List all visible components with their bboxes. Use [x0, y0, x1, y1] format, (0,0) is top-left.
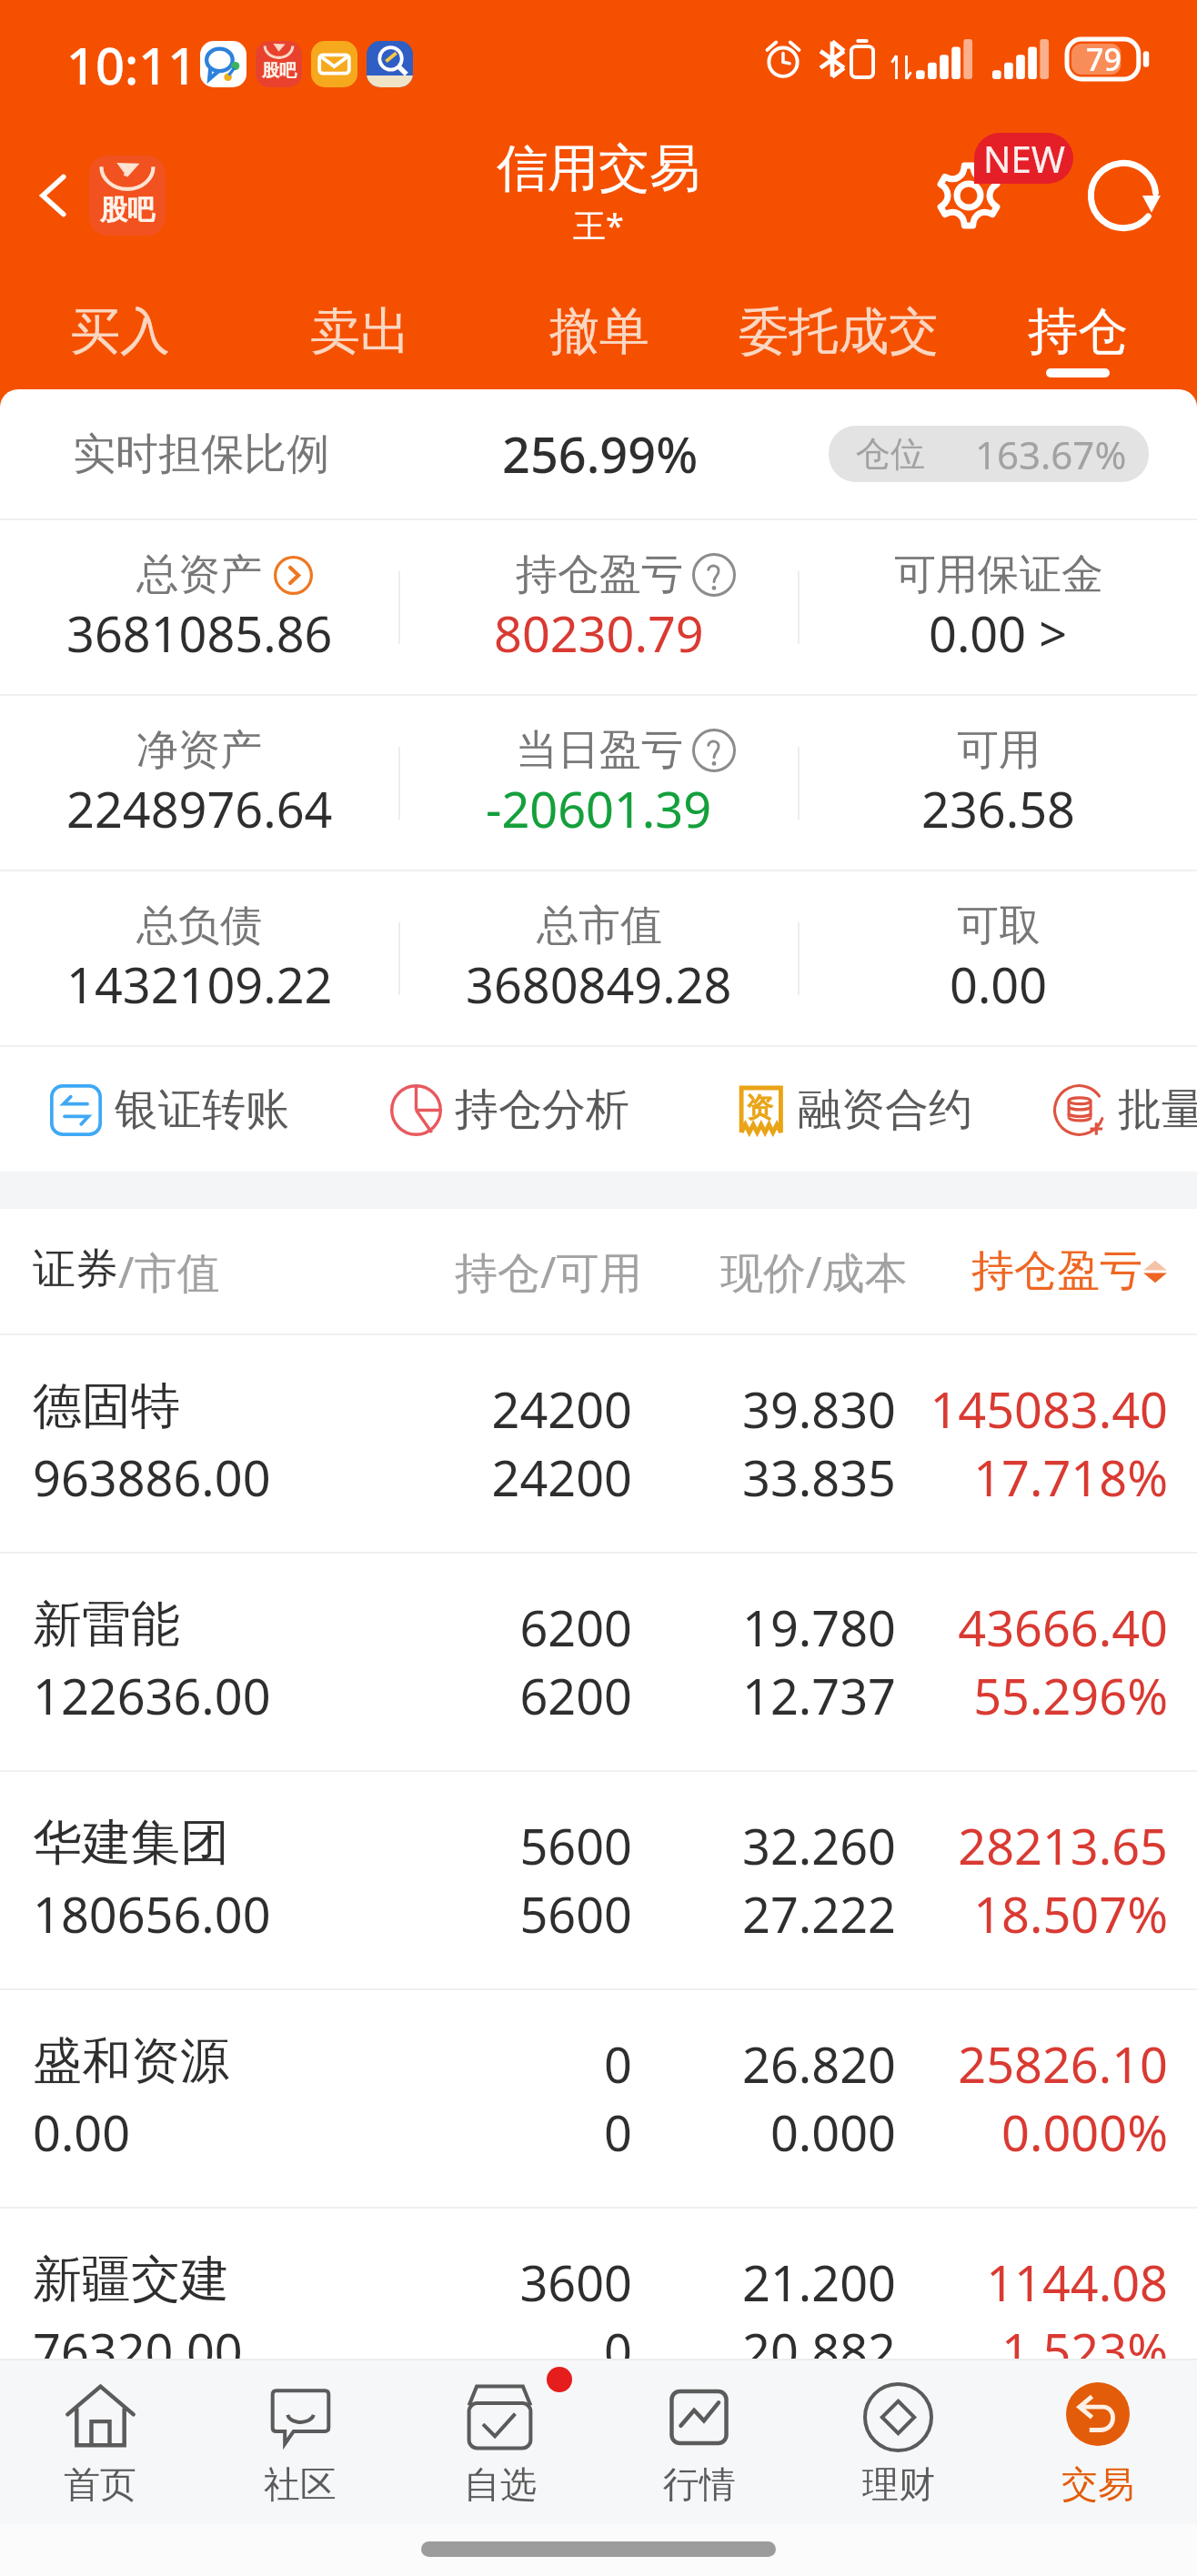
staticText: 1432109.22 [66, 951, 333, 1018]
staticText: 总负债 [136, 900, 262, 952]
button[interactable]: 华建集团 [0, 1772, 1197, 1988]
staticText: 总资产 [136, 548, 262, 601]
staticText: 963886.00 [33, 1444, 271, 1498]
staticText: 236.58 [921, 775, 1075, 842]
staticText: 28213.65 [0, 1812, 1168, 1867]
staticText: 18.507% [0, 1880, 1168, 1935]
button[interactable]: 净资产 [0, 696, 398, 870]
staticText: 证券 [33, 1243, 118, 1296]
staticText: 80230.79 [494, 599, 704, 667]
button[interactable]: 新疆交建 [0, 2209, 1197, 2359]
staticText: 委托成交 [739, 300, 939, 363]
staticText: 2248976.64 [66, 775, 333, 842]
staticText: 3680849.28 [466, 951, 732, 1018]
button[interactable]: Refresh [1078, 150, 1169, 241]
button[interactable]: 批量 [1053, 1082, 1197, 1137]
staticText: 持仓 [1028, 300, 1128, 363]
button[interactable]: 卖出 [240, 273, 479, 391]
button[interactable]: 股吧 [89, 156, 166, 236]
staticText: 0.00 > [929, 599, 1068, 667]
staticText: 145083.40 [0, 1375, 1168, 1430]
staticText: 6200 [0, 1594, 632, 1648]
button[interactable]: 持仓 [958, 273, 1197, 391]
staticText: 39.830 [0, 1375, 896, 1430]
staticText: 当日盈亏 [516, 724, 683, 777]
button[interactable]: 总市值 [400, 871, 798, 1045]
button[interactable]: 总资产 [0, 520, 398, 694]
staticText: 可用保证金 [894, 548, 1103, 601]
staticText: 163.67% [975, 428, 1127, 480]
staticText: 净资产 [136, 724, 262, 777]
button[interactable]: 交易 [998, 2360, 1197, 2524]
button[interactable]: 德固特 [0, 1335, 1197, 1552]
staticText: 行情 [663, 2461, 736, 2507]
button[interactable]: 撤单 [479, 273, 719, 391]
staticText: 买入 [70, 300, 170, 363]
staticText: 华建集团 [33, 1812, 229, 1867]
button[interactable]: 盛和资源 [0, 1990, 1197, 2207]
button[interactable]: 首页 [0, 2360, 200, 2524]
staticText: 24200 [0, 1444, 632, 1498]
button[interactable]: 可用 [800, 696, 1197, 870]
button[interactable]: 社区 [200, 2360, 400, 2524]
staticText: NEW [983, 134, 1065, 183]
staticText: 交易 [1061, 2461, 1134, 2507]
staticText: 持仓分析 [455, 1082, 629, 1137]
staticText: 17.718% [0, 1444, 1168, 1498]
staticText: 76320.00 [33, 2317, 243, 2359]
staticText: 43666.40 [0, 1594, 1168, 1648]
button[interactable]: 可取 [800, 871, 1197, 1045]
button[interactable]: 总负债 [0, 871, 398, 1045]
staticText: 卖出 [310, 300, 410, 363]
button[interactable]: Back [16, 157, 93, 234]
staticText: 25826.10 [0, 2030, 1168, 2085]
staticText: 0.000% [0, 2098, 1168, 2153]
button[interactable]: 行情 [599, 2360, 799, 2524]
button[interactable]: 自选 [400, 2360, 599, 2524]
staticText: 0 [0, 2317, 632, 2359]
staticText: 理财 [862, 2461, 935, 2507]
staticText: 王* [573, 203, 624, 247]
staticText: 持仓盈亏 [971, 1244, 1142, 1298]
staticText: 20.882 [0, 2317, 896, 2359]
staticText: 新雷能 [33, 1594, 180, 1648]
staticText: 可用 [957, 724, 1041, 777]
button[interactable]: 持仓盈亏 [400, 520, 798, 694]
button[interactable]: 资 [733, 1082, 972, 1137]
staticText: 持仓/可用 [455, 1243, 642, 1301]
staticText: 27.222 [0, 1880, 896, 1935]
staticText: 0.00 [950, 951, 1048, 1018]
staticText: 10:11 [66, 30, 197, 99]
button[interactable]: 持仓分析 [390, 1082, 629, 1137]
staticText: 5600 [0, 1880, 632, 1935]
staticText: 24200 [0, 1375, 632, 1430]
button[interactable]: 当日盈亏 [400, 696, 798, 870]
staticText: 盛和资源 [33, 2030, 229, 2085]
staticText: 现价/成本 [720, 1243, 908, 1301]
button[interactable]: 银证转账 [50, 1082, 289, 1137]
staticText: 3600 [0, 2249, 632, 2303]
button[interactable]: 委托成交 [719, 273, 958, 391]
button[interactable]: 可用保证金 [800, 520, 1197, 694]
staticText: 新疆交建 [33, 2249, 229, 2303]
button[interactable]: 买入 [0, 273, 240, 391]
staticText: 批量 [1118, 1082, 1197, 1137]
staticText: 总市值 [537, 900, 662, 952]
staticText: 12.737 [0, 1662, 896, 1716]
staticText: 首页 [64, 2461, 136, 2507]
button[interactable]: Settings [923, 150, 1014, 241]
staticText: 79 [1086, 38, 1122, 80]
button[interactable]: 持仓盈亏 [971, 1244, 1168, 1298]
button[interactable]: 理财 [799, 2360, 998, 2524]
staticText: 银证转账 [115, 1082, 289, 1137]
button[interactable]: 新雷能 [0, 1554, 1197, 1770]
staticText: 仓位 [856, 432, 925, 476]
staticText: 55.296% [0, 1662, 1168, 1716]
staticText: 180656.00 [33, 1880, 271, 1935]
staticText: 1144.08 [0, 2249, 1168, 2303]
staticText: /市值 [118, 1243, 220, 1301]
staticText: 0 [0, 2098, 632, 2153]
staticText: 21.200 [0, 2249, 896, 2303]
staticText: 持仓盈亏 [516, 548, 683, 601]
button[interactable]: 仓位 [829, 426, 1149, 482]
